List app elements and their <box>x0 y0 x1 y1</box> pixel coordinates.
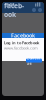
staticText: Log in to Facebook <box>4 40 39 45</box>
staticText: www.facebook.com <box>4 45 38 51</box>
staticText: Continue <box>26 55 41 66</box>
button[interactable]: Continue <box>26 59 42 63</box>
staticText: facebook <box>4 1 24 19</box>
staticText: Facebook <box>11 32 35 39</box>
staticText: 9:41 <box>5 1 15 8</box>
staticText: ıll <box>35 1 41 8</box>
